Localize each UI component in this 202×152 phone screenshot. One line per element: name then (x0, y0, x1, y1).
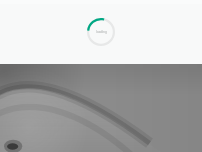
button[interactable]: Loading (87, 18, 115, 46)
staticText: loading (96, 30, 107, 34)
